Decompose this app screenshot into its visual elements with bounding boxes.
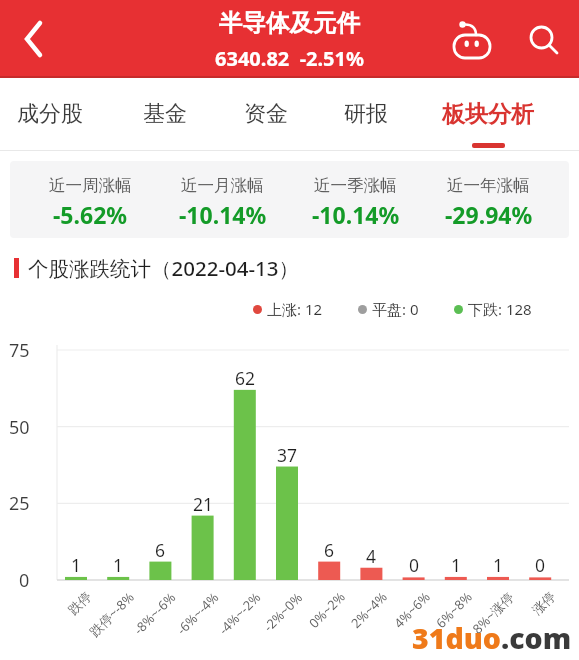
staticText: -10.14% xyxy=(312,199,400,230)
staticText: 25 xyxy=(9,491,30,516)
staticText: 50 xyxy=(9,415,30,440)
staticText: 近一月涨幅 xyxy=(181,175,264,196)
staticText: 板块分析 xyxy=(442,100,534,129)
staticText: 下跌: 128 xyxy=(468,299,532,319)
staticText: 4 xyxy=(366,544,377,568)
staticText: 1 xyxy=(451,553,462,577)
staticText: 个股涨跌统计（2022-04-13） xyxy=(28,254,299,282)
staticText: 近一周涨幅 xyxy=(49,175,132,196)
staticText: -6%~-4% xyxy=(172,588,223,638)
button[interactable]: 基金 xyxy=(95,92,235,136)
button[interactable]: 板块分析 xyxy=(418,92,558,136)
staticText: -29.94% xyxy=(445,199,533,230)
button[interactable] xyxy=(518,16,570,64)
button[interactable]: 成分股 xyxy=(0,92,120,136)
staticText: 1 xyxy=(71,553,82,577)
staticText: 21 xyxy=(193,492,214,516)
staticText: 资金 xyxy=(244,100,288,128)
staticText: 近一年涨幅 xyxy=(447,175,530,196)
button[interactable] xyxy=(6,8,62,70)
staticText: -2%~0% xyxy=(259,588,307,635)
staticText: .com xyxy=(501,619,572,658)
staticText: 0 xyxy=(535,553,546,577)
staticText: 半导体及元件 xyxy=(219,8,360,38)
button[interactable] xyxy=(446,16,498,64)
staticText: 62 xyxy=(235,366,256,390)
staticText: 8%~涨停 xyxy=(468,588,518,637)
staticText: 4%~6% xyxy=(390,588,434,632)
staticText: 31duo xyxy=(412,619,501,658)
staticText: 跌停 xyxy=(65,588,94,618)
staticText: -4%~-2% xyxy=(214,588,265,638)
staticText: -5.62% xyxy=(53,199,128,230)
staticText: 1 xyxy=(493,553,504,577)
staticText: 75 xyxy=(9,338,30,363)
staticText: 0 xyxy=(409,553,420,577)
staticText: 成分股 xyxy=(17,100,83,128)
staticText: 近一季涨幅 xyxy=(314,175,397,196)
staticText: -8%~-6% xyxy=(129,588,180,638)
staticText: 涨停 xyxy=(529,588,558,618)
staticText: 37 xyxy=(277,443,298,467)
staticText: 6340.82 -2.51% xyxy=(215,45,365,72)
staticText: 6 xyxy=(155,538,166,562)
staticText: 跌停~-8% xyxy=(85,588,138,640)
staticText: 上涨: 12 xyxy=(267,299,323,319)
staticText: 0 xyxy=(19,568,30,593)
staticText: 平盘: 0 xyxy=(372,299,419,319)
staticText: -10.14% xyxy=(179,199,267,230)
staticText: 6%~8% xyxy=(432,588,476,632)
button[interactable]: 研报 xyxy=(296,92,436,136)
staticText: 基金 xyxy=(143,100,187,128)
staticText: 1 xyxy=(113,553,124,577)
staticText: 0%~2% xyxy=(305,588,349,632)
staticText: 2%~4% xyxy=(347,588,391,632)
button[interactable]: 资金 xyxy=(196,92,336,136)
staticText: 6 xyxy=(324,538,335,562)
staticText: 研报 xyxy=(344,100,388,128)
